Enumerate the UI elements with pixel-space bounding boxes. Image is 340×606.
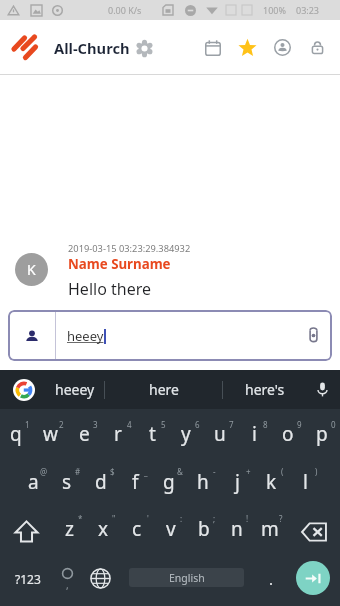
staticText: !: [246, 513, 249, 524]
button[interactable]: f: [119, 457, 153, 504]
button[interactable]: l: [289, 457, 323, 504]
staticText: here's: [245, 380, 285, 399]
staticText: ": [112, 513, 116, 524]
button[interactable]: c: [121, 504, 155, 551]
button[interactable]: Send: [290, 561, 335, 595]
button[interactable]: v: [155, 504, 188, 551]
staticText: #: [75, 466, 81, 477]
staticText: 03:23: [296, 4, 320, 16]
button[interactable]: Favorites: [230, 30, 265, 65]
staticText: t: [149, 421, 156, 447]
staticText: 9: [297, 419, 302, 430]
button[interactable]: English: [129, 568, 244, 587]
staticText: 2: [59, 419, 64, 430]
button[interactable]: y: [170, 409, 204, 457]
button[interactable]: Google: [2, 370, 45, 409]
button[interactable]: e: [68, 409, 102, 457]
button[interactable]: r: [102, 409, 136, 457]
button[interactable]: Account: [265, 30, 300, 65]
staticText: :: [180, 513, 183, 524]
button[interactable]: q: [0, 409, 34, 457]
staticText: w: [43, 421, 58, 447]
button[interactable]: Change language: [84, 551, 117, 606]
button[interactable]: j: [221, 457, 255, 504]
staticText: ): [315, 466, 318, 477]
staticText: h: [197, 469, 209, 495]
staticText: s: [62, 469, 72, 495]
button[interactable]: u: [204, 409, 238, 457]
staticText: 6: [195, 419, 200, 430]
staticText: a: [28, 469, 39, 495]
button[interactable]: o: [272, 409, 306, 457]
button[interactable]: Attach file: [294, 310, 332, 361]
button[interactable]: Settings: [133, 37, 155, 59]
staticText: English: [169, 571, 205, 585]
staticText: z: [65, 516, 74, 542]
staticText: 2019-03-15 03:23:29.384932: [68, 242, 191, 255]
staticText: l: [303, 469, 308, 495]
button[interactable]: h: [187, 457, 221, 504]
button[interactable]: m: [254, 504, 287, 551]
staticText: *: [78, 513, 83, 524]
staticText: k: [266, 469, 277, 495]
staticText: Name Surname: [68, 255, 171, 273]
staticText: 8: [263, 419, 268, 430]
staticText: d: [95, 469, 107, 495]
button[interactable]: Calendar: [195, 30, 230, 65]
staticText: o: [282, 421, 294, 447]
staticText: heeey: [67, 327, 104, 345]
staticText: 1: [25, 419, 30, 430]
button[interactable]: ?123: [0, 551, 56, 606]
button[interactable]: t: [136, 409, 170, 457]
button[interactable]: d: [85, 457, 119, 504]
button[interactable]: here's: [223, 370, 307, 409]
staticText: c: [132, 516, 142, 542]
button[interactable]: heeey: [45, 370, 104, 409]
button[interactable]: g: [153, 457, 187, 504]
button[interactable]: .: [256, 551, 286, 606]
button[interactable]: z: [53, 504, 87, 551]
staticText: ': [147, 513, 149, 524]
button[interactable]: here: [105, 370, 222, 409]
staticText: 0: [331, 419, 336, 430]
staticText: ;: [213, 513, 216, 524]
staticText: -: [213, 466, 216, 477]
staticText: 7: [229, 419, 234, 430]
staticText: &: [177, 466, 183, 477]
staticText: 100%: [263, 4, 286, 16]
staticText: All-Church: [54, 38, 130, 58]
button[interactable]: p: [306, 409, 340, 457]
staticText: i: [252, 421, 257, 447]
staticText: p: [316, 421, 328, 447]
staticText: $: [110, 466, 115, 477]
button[interactable]: b: [188, 504, 221, 551]
button[interactable]: heeey: [8, 310, 332, 361]
staticText: 3: [93, 419, 98, 430]
button[interactable]: w: [34, 409, 68, 457]
button[interactable]: x: [87, 504, 121, 551]
button[interactable]: n: [221, 504, 254, 551]
button[interactable]: Backspace: [287, 504, 340, 551]
staticText: n: [231, 516, 243, 542]
button[interactable]: Lock: [300, 30, 335, 65]
button[interactable]: s: [51, 457, 85, 504]
button[interactable]: i: [238, 409, 272, 457]
staticText: u: [214, 421, 226, 447]
staticText: here: [149, 380, 179, 399]
button[interactable]: Shift: [0, 504, 53, 551]
staticText: b: [198, 516, 210, 542]
staticText: ?123: [15, 571, 41, 587]
staticText: @: [40, 466, 48, 477]
button[interactable]: Emoji and comma: [53, 551, 81, 606]
button[interactable]: App logo: [9, 34, 37, 62]
staticText: _: [144, 466, 148, 477]
button[interactable]: k: [255, 457, 289, 504]
button[interactable]: Voice input: [305, 370, 340, 409]
staticText: 0.00 K/s: [108, 4, 142, 16]
staticText: K: [27, 260, 36, 279]
staticText: .: [269, 569, 274, 589]
staticText: 5: [161, 419, 166, 430]
button[interactable]: a: [17, 457, 51, 504]
staticText: y: [181, 421, 191, 447]
staticText: ?: [279, 513, 283, 524]
